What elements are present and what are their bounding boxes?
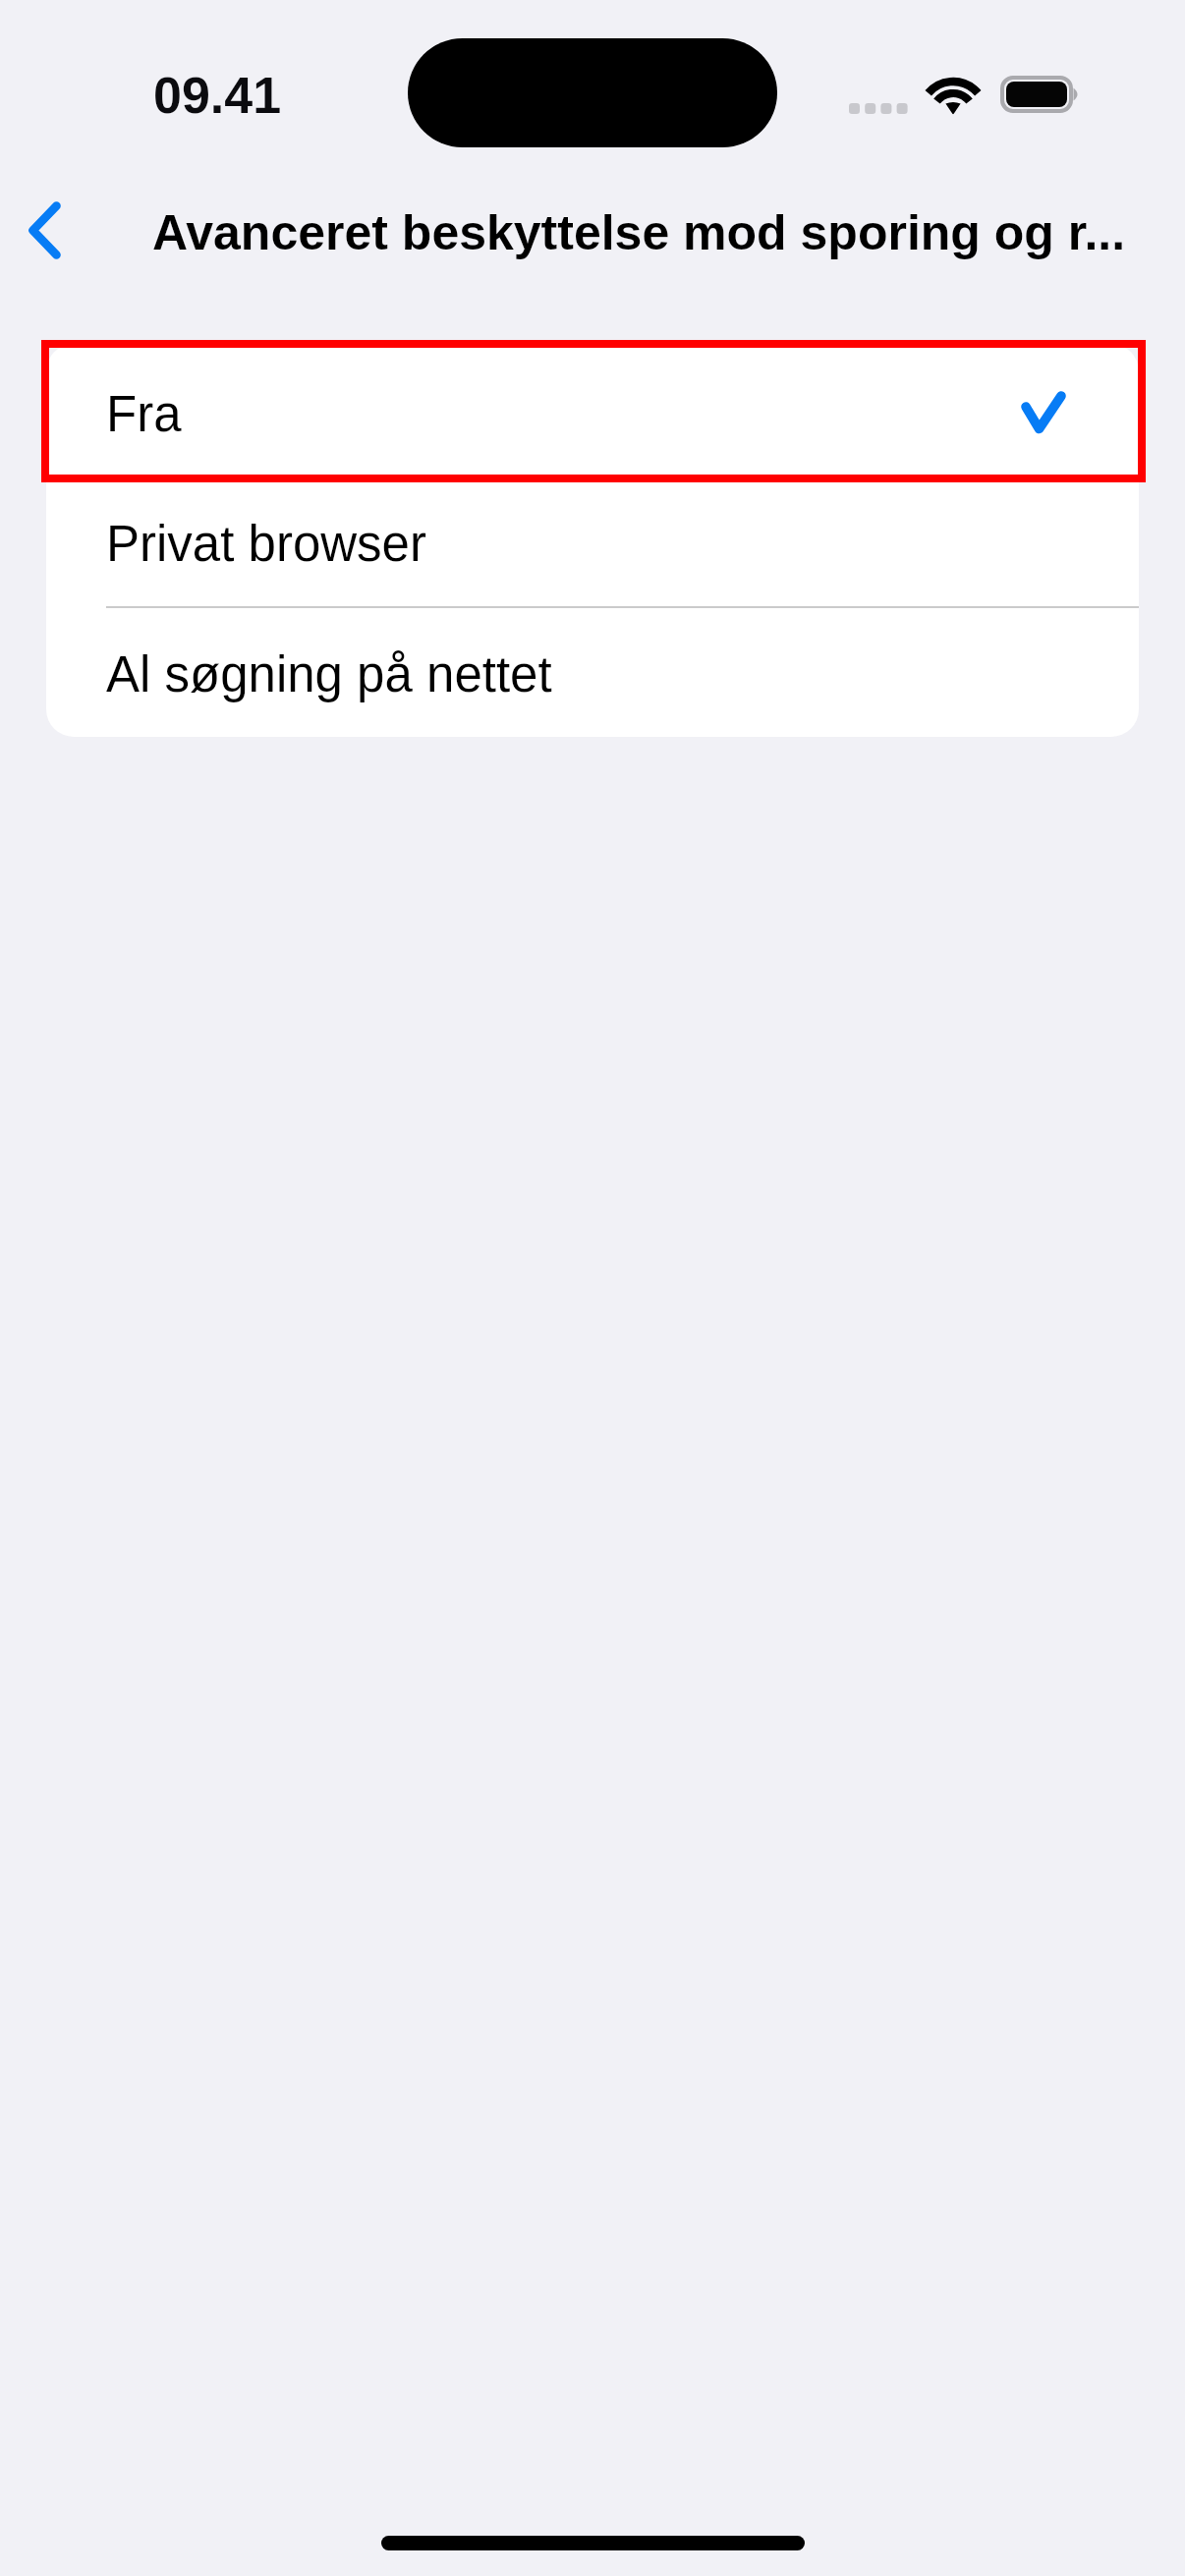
- staticText: Privat browser: [106, 516, 426, 572]
- button[interactable]: Al søgning på nettet: [46, 608, 1139, 737]
- staticText: Al søgning på nettet: [106, 646, 552, 702]
- staticText: Fra: [106, 386, 182, 442]
- staticText: 09.41: [153, 67, 282, 124]
- button[interactable]: Privat browser: [46, 478, 1139, 606]
- button[interactable]: Fra: [46, 344, 1139, 478]
- staticText: Avanceret beskyttelse mod sporing og r..…: [152, 205, 1126, 260]
- button[interactable]: Tilbage: [0, 183, 108, 277]
